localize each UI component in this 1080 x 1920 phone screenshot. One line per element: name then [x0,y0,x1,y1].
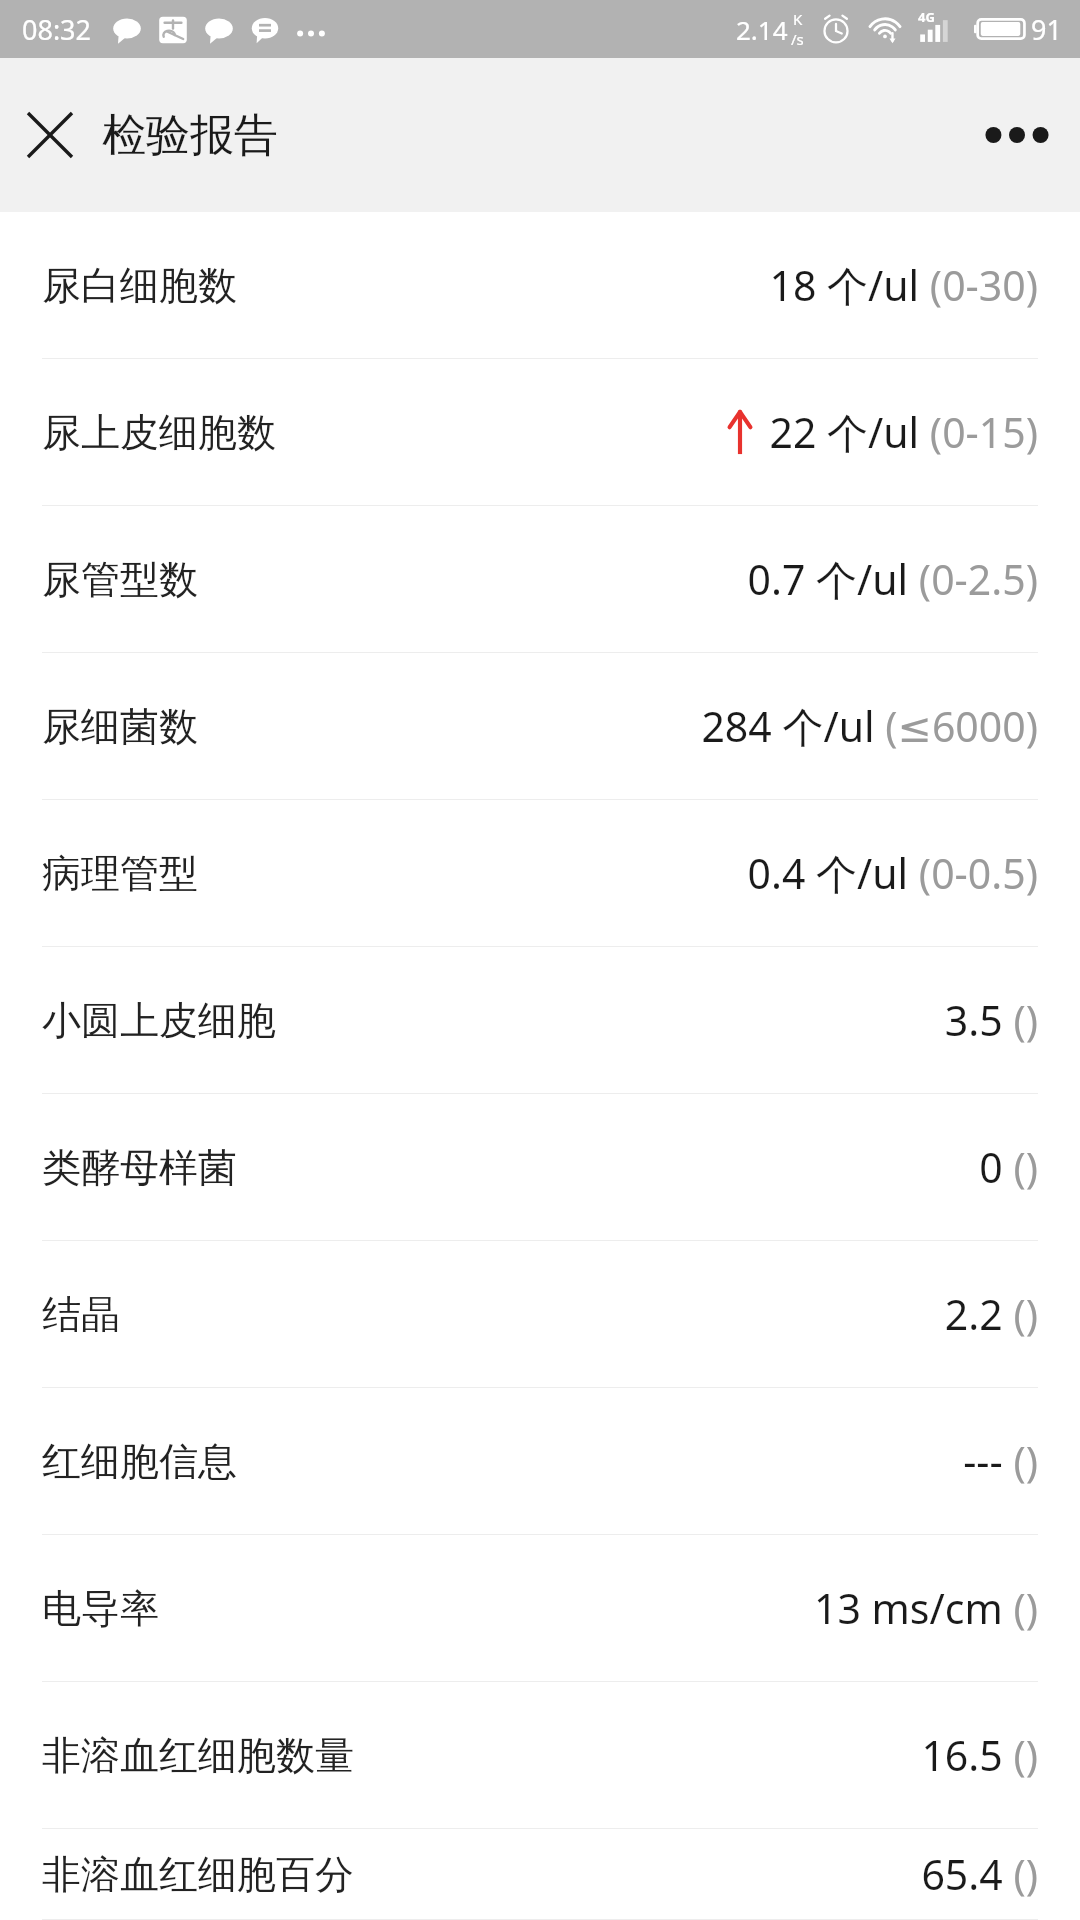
staticText: 91 [1031,11,1062,48]
staticText: 类酵母样菌 [42,1143,237,1192]
button[interactable]: 电导率 [0,1535,1080,1682]
button[interactable]: 非溶血红细胞数量 [0,1682,1080,1829]
staticText: 尿白细胞数 [42,261,237,310]
button[interactable]: 小圆上皮细胞 [0,947,1080,1094]
button[interactable]: 类酵母样菌 [0,1094,1080,1241]
staticText: 0 () [979,1139,1038,1195]
staticText: 小圆上皮细胞 [42,996,276,1045]
staticText: 尿上皮细胞数 [42,408,276,457]
staticText: 18 个/ul (0-30) [769,257,1038,313]
staticText: 0.4 个/ul (0-0.5) [747,845,1038,901]
staticText: 08:32 [22,11,92,48]
staticText: 3.5 () [944,992,1038,1048]
staticText: K [793,9,803,29]
button[interactable]: 非溶血红细胞百分 [0,1829,1080,1920]
staticText: 电导率 [42,1584,159,1633]
button[interactable]: 结晶 [0,1241,1080,1388]
button[interactable]: More options [972,90,1062,180]
button[interactable]: 尿白细胞数 [0,212,1080,359]
button[interactable]: 尿细菌数 [0,653,1080,800]
staticText: 2.14 [736,12,788,47]
staticText: 尿管型数 [42,555,198,604]
staticText: --- () [963,1433,1038,1489]
staticText: 红细胞信息 [42,1437,237,1486]
staticText: 4G [918,8,935,26]
staticText: 284 个/ul (≤6000) [701,698,1038,754]
button[interactable]: 尿管型数 [0,506,1080,653]
staticText: 病理管型 [42,849,198,898]
staticText: /s [791,29,804,49]
staticText: 13 ms/cm () [813,1580,1038,1636]
staticText: 65.4 () [921,1846,1038,1902]
staticText: 检验报告 [102,108,278,163]
button[interactable]: Close [10,95,90,175]
staticText: 非溶血红细胞数量 [42,1731,354,1780]
staticText: 2.2 () [944,1286,1038,1342]
staticText: 尿细菌数 [42,702,198,751]
staticText: 22 个/ul (0-15) [769,404,1038,460]
button[interactable]: 病理管型 [0,800,1080,947]
button[interactable]: 尿上皮细胞数 [0,359,1080,506]
button[interactable]: 红细胞信息 [0,1388,1080,1535]
staticText: 16.5 () [921,1727,1038,1783]
staticText: 非溶血红细胞百分 [42,1850,354,1899]
staticText: 结晶 [42,1290,120,1339]
staticText: 0.7 个/ul (0-2.5) [747,551,1038,607]
